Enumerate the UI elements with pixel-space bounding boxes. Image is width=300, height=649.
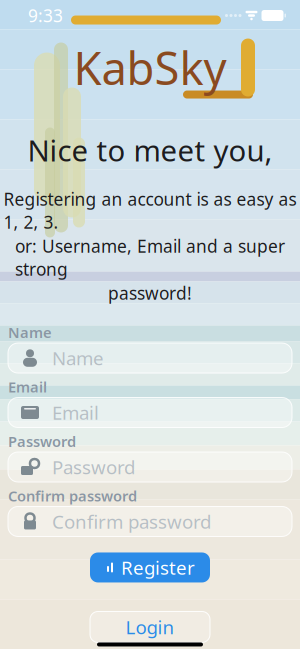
staticText: KabSky bbox=[73, 37, 226, 98]
button[interactable]: Register bbox=[90, 552, 210, 582]
button[interactable]: Email bbox=[8, 397, 292, 427]
staticText: Register bbox=[121, 555, 195, 580]
staticText: 9:33 bbox=[28, 4, 63, 27]
staticText: password! bbox=[108, 281, 192, 304]
staticText: or: Username, Email and a super strong bbox=[15, 234, 285, 280]
staticText: Login bbox=[125, 615, 174, 639]
staticText: Name bbox=[8, 323, 52, 342]
button[interactable]: Login bbox=[90, 611, 210, 642]
staticText: Confirm password bbox=[52, 509, 211, 534]
staticText: Confirm password bbox=[8, 486, 137, 505]
button[interactable]: Confirm password bbox=[8, 506, 292, 536]
button[interactable]: Name bbox=[8, 343, 292, 373]
staticText: Name bbox=[52, 346, 104, 370]
staticText: Password bbox=[8, 431, 76, 451]
staticText: Email bbox=[8, 377, 47, 396]
staticText: Nice to meet you, bbox=[27, 130, 272, 169]
staticText: Email bbox=[52, 400, 99, 425]
staticText: Password bbox=[52, 455, 135, 479]
button[interactable]: Password bbox=[8, 452, 292, 482]
staticText: Registering an account is as easy as 1, … bbox=[3, 187, 296, 233]
